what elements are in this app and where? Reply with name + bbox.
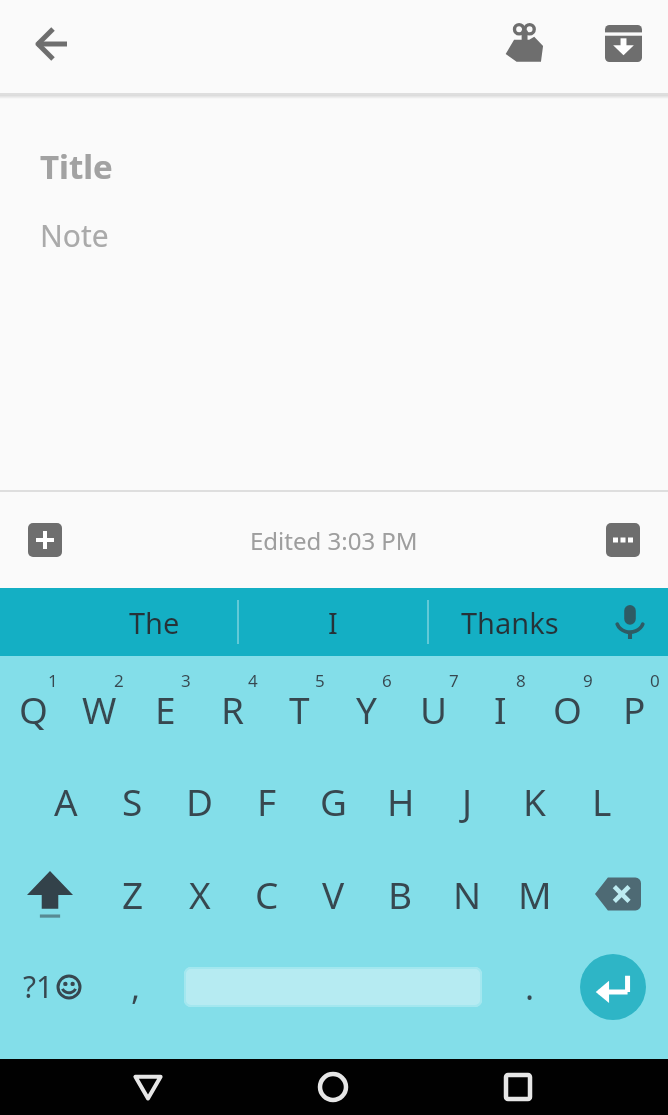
button[interactable] xyxy=(580,954,646,1020)
button[interactable] xyxy=(184,967,482,1007)
staticText: O xyxy=(553,684,582,734)
staticText: 1 xyxy=(48,669,58,692)
button[interactable]: R xyxy=(199,662,266,754)
button[interactable]: T xyxy=(266,662,333,754)
button[interactable] xyxy=(108,1059,188,1115)
staticText: I xyxy=(494,684,507,734)
staticText: 7 xyxy=(449,669,459,692)
button[interactable]: O xyxy=(534,662,601,754)
button[interactable]: X xyxy=(166,847,233,940)
button[interactable]: J xyxy=(434,754,501,847)
staticText: I xyxy=(328,603,338,642)
staticText: R xyxy=(221,684,245,734)
staticText: X xyxy=(189,869,211,919)
button[interactable]: , xyxy=(118,940,154,1033)
button[interactable]: W xyxy=(66,662,132,754)
button[interactable]: Z xyxy=(100,847,166,940)
button[interactable]: F xyxy=(233,754,300,847)
button[interactable]: S xyxy=(99,754,166,847)
staticText: Thanks xyxy=(461,603,559,642)
staticText: Y xyxy=(356,684,377,734)
button[interactable]: Q xyxy=(0,662,66,754)
staticText: V xyxy=(322,869,345,919)
staticText: 5 xyxy=(315,669,325,692)
button[interactable] xyxy=(606,523,640,557)
button[interactable] xyxy=(478,1059,558,1115)
staticText: A xyxy=(54,776,78,826)
staticText: N xyxy=(453,869,482,919)
button[interactable]: Thanks xyxy=(430,588,590,656)
staticText: 2 xyxy=(114,669,124,692)
staticText: Note xyxy=(40,215,109,256)
staticText: C xyxy=(255,869,279,919)
staticText: 9 xyxy=(583,669,593,692)
button[interactable] xyxy=(587,0,659,90)
staticText: W xyxy=(82,684,117,734)
button[interactable]: I xyxy=(253,588,413,656)
staticText: F xyxy=(257,776,277,826)
button[interactable] xyxy=(568,847,668,940)
staticText: Q xyxy=(19,684,48,734)
staticText: P xyxy=(623,684,646,734)
staticText: H xyxy=(387,776,415,826)
button[interactable]: ?1 xyxy=(0,940,104,1033)
staticText: T xyxy=(289,684,310,734)
staticText: ?1 xyxy=(23,966,54,1007)
staticText: U xyxy=(420,684,448,734)
button[interactable]: Y xyxy=(333,662,400,754)
staticText: S xyxy=(122,776,143,826)
staticText: The xyxy=(129,603,180,642)
button[interactable]: L xyxy=(568,754,635,847)
button[interactable] xyxy=(28,523,62,557)
button[interactable]: C xyxy=(233,847,300,940)
button[interactable]: G xyxy=(300,754,367,847)
staticText: Title xyxy=(40,144,113,189)
staticText: E xyxy=(155,684,176,734)
button[interactable] xyxy=(293,1059,373,1115)
button[interactable]: H xyxy=(367,754,434,847)
button[interactable] xyxy=(0,847,100,940)
button[interactable] xyxy=(606,588,654,656)
staticText: L xyxy=(592,776,612,826)
button[interactable]: A xyxy=(33,754,99,847)
staticText: 3 xyxy=(181,669,191,692)
staticText: M xyxy=(518,869,552,919)
staticText: K xyxy=(523,776,546,826)
staticText: Z xyxy=(122,869,144,919)
staticText: 0 xyxy=(650,669,660,692)
button[interactable]: E xyxy=(132,662,199,754)
staticText: J xyxy=(462,776,473,826)
button[interactable] xyxy=(489,0,561,90)
button[interactable]: P xyxy=(601,662,668,754)
button[interactable]: K xyxy=(501,754,568,847)
button[interactable]: The xyxy=(74,588,234,656)
staticText: D xyxy=(186,776,214,826)
button[interactable] xyxy=(6,0,98,90)
button[interactable]: . xyxy=(512,940,548,1033)
staticText: Edited 3:03 PM xyxy=(250,524,418,557)
staticText: , xyxy=(131,964,141,1010)
button[interactable]: B xyxy=(367,847,434,940)
staticText: . xyxy=(525,964,535,1010)
staticText: B xyxy=(388,869,413,919)
button[interactable]: I xyxy=(467,662,534,754)
button[interactable]: V xyxy=(300,847,367,940)
staticText: 6 xyxy=(382,669,392,692)
staticText: 8 xyxy=(516,669,526,692)
button[interactable]: U xyxy=(400,662,467,754)
button[interactable]: D xyxy=(166,754,233,847)
button[interactable]: M xyxy=(501,847,568,940)
staticText: G xyxy=(320,776,347,826)
staticText: 4 xyxy=(248,669,258,692)
button[interactable]: N xyxy=(434,847,501,940)
